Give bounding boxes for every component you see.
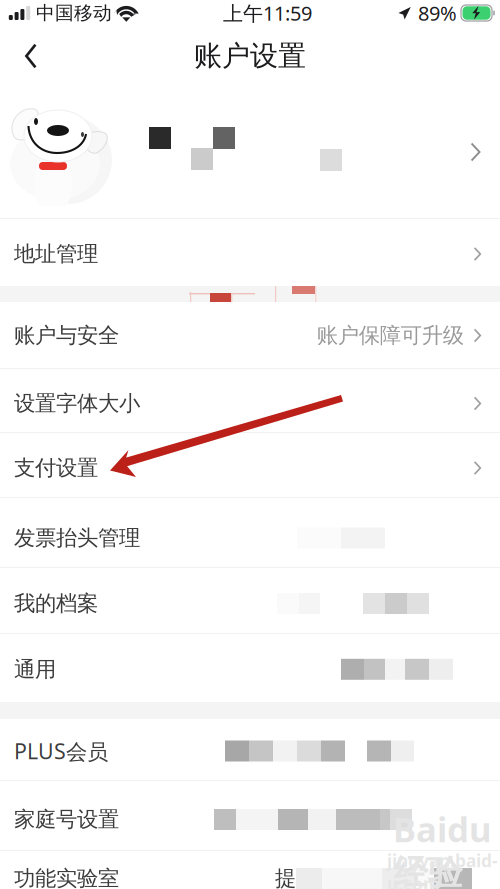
button[interactable]: 家庭号设置 — [0, 781, 500, 850]
button[interactable]: 功能实验室 — [0, 851, 500, 889]
staticText: 账户设置 — [194, 39, 306, 73]
staticText: PLUS会员 — [14, 737, 108, 765]
button[interactable]: 发票抬头管理 — [0, 498, 500, 567]
staticText: 提 — [275, 865, 296, 889]
staticText: 发票抬头管理 — [14, 525, 140, 551]
staticText: 支付设置 — [14, 455, 98, 481]
staticText: 上午11:59 — [223, 0, 312, 26]
button[interactable]: 支付设置 — [0, 433, 500, 497]
button[interactable]: 地址管理 — [0, 219, 500, 286]
staticText: 中国移动 — [36, 1, 112, 24]
button[interactable]: 通用 — [0, 634, 500, 702]
staticText: 家庭号设置 — [14, 806, 119, 833]
button[interactable]: 设置字体大小 — [0, 369, 500, 432]
button[interactable]: 返回 — [0, 26, 62, 86]
staticText: 89% — [418, 0, 457, 26]
staticText: 功能实验室 — [14, 865, 119, 889]
staticText: jingyan.baidu.com — [387, 849, 498, 889]
button[interactable] — [0, 86, 500, 218]
button[interactable]: PLUS会员 — [0, 719, 500, 780]
button[interactable]: 我的档案 — [0, 568, 500, 633]
staticText: 我的档案 — [14, 590, 98, 617]
staticText: 地址管理 — [14, 241, 98, 267]
staticText: Baidu 经验 — [393, 806, 492, 889]
staticText: 账户与安全 — [14, 322, 119, 349]
staticText: 通用 — [14, 656, 56, 682]
staticText: 账户保障可升级 — [317, 322, 464, 349]
staticText: 设置字体大小 — [14, 390, 140, 417]
button[interactable]: 账户与安全 — [0, 302, 500, 368]
